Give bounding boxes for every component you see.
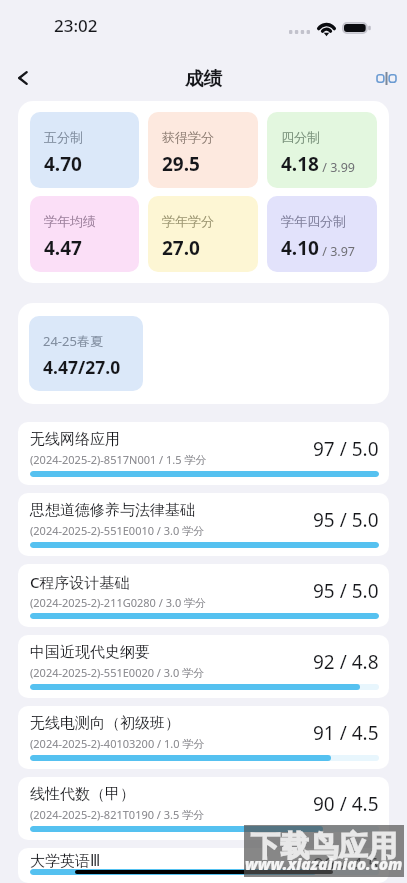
button[interactable]: 四分制 — [267, 112, 377, 188]
staticText: 五分制 — [44, 129, 83, 145]
staticText: 下载鸟应用 — [251, 828, 397, 865]
button[interactable]: Back — [7, 62, 39, 94]
staticText: 成绩 — [185, 67, 222, 90]
staticText: 四分制 — [281, 129, 320, 145]
staticText: (2024-2025-2)-551E0010 / 3.0 学分 — [30, 523, 205, 538]
staticText: C程序设计基础 — [30, 572, 130, 592]
staticText: 思想道德修养与法律基础 — [30, 501, 195, 520]
staticText: 95 / 5.0 — [313, 507, 379, 533]
button[interactable]: 学年均绩 — [30, 196, 139, 272]
staticText: 27.0 — [162, 235, 200, 261]
button[interactable]: 线性代数（甲） — [18, 777, 389, 840]
staticText: 92 / 4.8 — [313, 649, 379, 675]
button[interactable]: 无线网络应用 — [18, 422, 389, 485]
staticText: 95 / 5.0 — [313, 578, 379, 604]
button[interactable]: 无线电测向（初级班） — [18, 706, 389, 769]
staticText: 中国近现代史纲要 — [30, 643, 150, 662]
staticText: 90 / 4.5 — [313, 852, 379, 869]
staticText: 90 / 4.5 — [313, 791, 379, 817]
staticText: 学年四分制 — [281, 213, 346, 229]
staticText: (2024-2025-2)-40103200 / 1.0 学分 — [30, 736, 205, 751]
staticText: 4.47 — [44, 235, 82, 261]
staticText: 29.5 — [162, 151, 200, 177]
staticText: 97 / 5.0 — [313, 436, 379, 462]
staticText: (2024-2025-2)-821T0190 / 3.5 学分 — [30, 807, 205, 822]
button[interactable]: 学年学分 — [148, 196, 258, 272]
staticText: 线性代数（甲） — [30, 785, 135, 804]
staticText: 无线网络应用 — [30, 430, 120, 449]
staticText: 无线电测向（初级班） — [30, 714, 180, 733]
staticText: 4.18 — [281, 151, 319, 177]
button[interactable]: 思想道德修养与法律基础 — [18, 493, 389, 556]
staticText: 4.10 — [281, 235, 319, 261]
staticText: 91 / 4.5 — [313, 720, 379, 746]
staticText: www.xiazainiao.com — [245, 853, 403, 874]
staticText: 学年均绩 — [44, 213, 96, 229]
staticText: 大学英语Ⅲ — [30, 852, 101, 869]
button[interactable]: 获得学分 — [148, 112, 258, 188]
staticText: 4.70 — [44, 151, 82, 177]
staticText: (2024-2025-2)-551E0020 / 3.0 学分 — [30, 665, 205, 680]
button[interactable]: Compare — [371, 63, 401, 93]
staticText: 4.47/27.0 — [43, 355, 121, 379]
staticText: 获得学分 — [162, 129, 214, 145]
staticText: (2024-2025-2)-8517N001 / 1.5 学分 — [30, 452, 207, 467]
button[interactable]: C程序设计基础 — [18, 564, 389, 627]
staticText: 24-25春夏 — [43, 332, 103, 350]
button[interactable]: 24-25春夏 — [29, 316, 143, 391]
staticText: / 3.99 — [319, 159, 355, 176]
staticText: (2024-2025-2)-211G0280 / 3.0 学分 — [30, 595, 207, 610]
staticText: 23:02 — [54, 14, 98, 37]
staticText: / 3.97 — [319, 243, 355, 260]
button[interactable]: 五分制 — [30, 112, 139, 188]
button[interactable]: 中国近现代史纲要 — [18, 635, 389, 698]
staticText: 学年学分 — [162, 213, 214, 229]
button[interactable]: 大学英语Ⅲ — [18, 848, 389, 883]
button[interactable]: 学年四分制 — [267, 196, 377, 272]
